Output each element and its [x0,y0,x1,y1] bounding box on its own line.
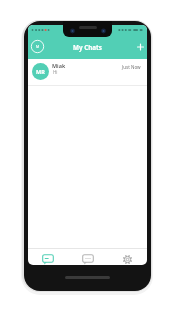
staticText: Just Now [122,64,141,70]
staticText: Miak [52,62,66,69]
staticText: Hi [53,69,58,75]
button[interactable]: M [30,39,45,54]
button[interactable] [28,248,68,265]
staticText: My Chats [73,43,102,52]
staticText: MR [36,68,45,75]
button[interactable] [133,39,147,54]
button[interactable] [107,248,147,265]
staticText: M [36,44,40,49]
button[interactable]: MR [28,59,147,85]
button[interactable] [68,248,108,265]
